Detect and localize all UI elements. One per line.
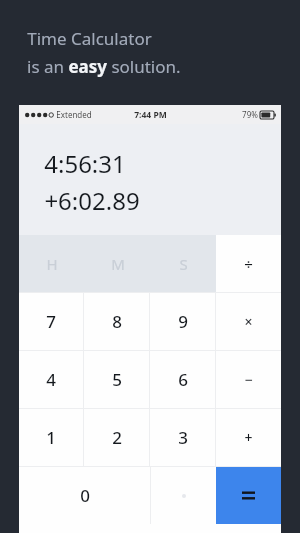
- button[interactable]: 4: [19, 351, 83, 408]
- staticText: H: [46, 254, 58, 274]
- staticText: +: [244, 428, 253, 447]
- staticText: 1: [46, 426, 56, 449]
- staticText: 0: [80, 484, 90, 507]
- staticText: 4: [46, 368, 56, 391]
- staticText: 7:44 PM: [134, 109, 167, 121]
- staticText: 6: [178, 368, 188, 391]
- button[interactable]: 5: [84, 351, 149, 408]
- staticText: −: [244, 370, 253, 389]
- staticText: 9: [178, 310, 188, 333]
- button[interactable]: 8: [84, 293, 149, 350]
- staticText: M: [111, 254, 125, 274]
- staticText: ×: [244, 312, 253, 331]
- button[interactable]: +: [216, 409, 281, 466]
- staticText: S: [179, 254, 188, 274]
- staticText: +6:02.89: [44, 184, 140, 217]
- button[interactable]: ×: [216, 293, 281, 350]
- staticText: Extended: [56, 109, 92, 120]
- staticText: 3: [178, 426, 188, 449]
- button[interactable]: ÷: [216, 235, 281, 292]
- button[interactable]: 3: [150, 409, 215, 466]
- staticText: 8: [112, 310, 122, 333]
- staticText: Time Calculator: [27, 27, 152, 50]
- button[interactable]: 7: [19, 293, 83, 350]
- button[interactable]: Equals: [216, 467, 281, 524]
- staticText: 2: [112, 426, 122, 449]
- staticText: 79%: [242, 109, 258, 120]
- staticText: 5: [112, 368, 122, 391]
- button[interactable]: −: [216, 351, 281, 408]
- button[interactable]: 1: [19, 409, 83, 466]
- button[interactable]: 0: [19, 467, 150, 524]
- button[interactable]: 6: [150, 351, 215, 408]
- staticText: is an easy solution.: [27, 55, 181, 78]
- staticText: ÷: [244, 254, 253, 274]
- button[interactable]: 2: [84, 409, 149, 466]
- staticText: 4:56:31: [44, 147, 126, 180]
- staticText: 7: [46, 310, 56, 333]
- button[interactable]: 9: [150, 293, 215, 350]
